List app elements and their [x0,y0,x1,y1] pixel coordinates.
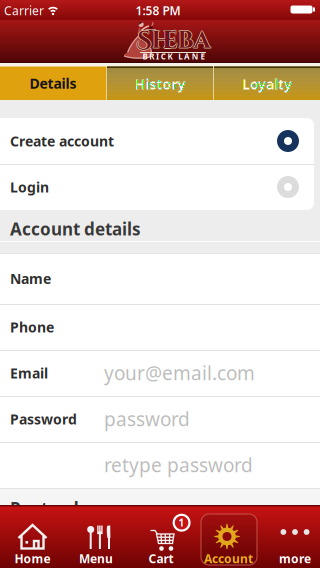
button[interactable]: Create account [0,118,320,164]
button[interactable]: Email [0,350,320,396]
button[interactable]: History [107,66,213,100]
staticText: Details [29,74,76,93]
staticText: Loyalty [242,75,292,93]
button[interactable]: Name [0,253,320,304]
staticText: Home [14,550,50,566]
staticText: Phone [10,318,54,336]
button[interactable]: Account [192,505,256,568]
staticText: Sheba [136,24,210,57]
staticText: 1:58 PM [135,2,180,18]
staticText: Email [10,364,48,382]
staticText: Account details [10,218,141,240]
staticText: your@email.com [104,360,255,386]
button[interactable]: More [256,505,320,568]
staticText: Create account [10,132,114,150]
staticText: History [134,75,185,93]
staticText: Sheba [136,23,210,56]
staticText: Postcode [10,497,89,520]
staticText: 1 [179,516,185,529]
staticText: BRICK LANE [142,51,205,62]
button[interactable]: Menu [64,505,128,568]
staticText: Sheba [136,24,210,57]
button[interactable]: Phone [0,304,320,350]
staticText: Menu [79,550,113,566]
staticText: Name [10,269,51,288]
staticText: Carrier [4,2,44,18]
staticText: more [279,550,311,566]
staticText: Password [10,410,77,428]
staticText: retype password [104,452,253,478]
button[interactable]: Cart [128,505,192,568]
staticText: Account [204,550,253,566]
staticText: Sheba [137,24,211,57]
button[interactable] [0,442,320,488]
staticText: Login [10,178,49,196]
button[interactable]: Login [0,164,320,210]
button[interactable]: Loyalty [214,66,320,100]
button[interactable]: Home [0,505,64,568]
button[interactable]: Details [0,66,106,100]
button[interactable]: Password [0,396,320,442]
staticText: password [104,406,190,432]
staticText: Sheba [136,25,210,57]
staticText: Cart [148,550,173,566]
